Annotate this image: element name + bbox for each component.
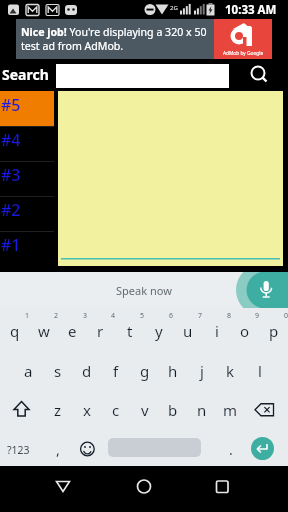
button[interactable]: h xyxy=(158,351,187,391)
staticText: ?123 xyxy=(7,443,30,457)
button[interactable]: y xyxy=(144,311,173,351)
staticText: 8 xyxy=(227,311,232,321)
button[interactable] xyxy=(73,430,102,469)
staticText: h xyxy=(168,361,178,381)
button[interactable]: c xyxy=(101,390,130,430)
button[interactable]: b xyxy=(158,390,187,430)
staticText: #3 xyxy=(1,164,21,186)
button[interactable]: f xyxy=(101,351,130,391)
button[interactable]: x xyxy=(72,390,101,430)
staticText: 0 xyxy=(284,311,288,321)
staticText: 2 xyxy=(54,311,59,321)
button[interactable]: n xyxy=(187,390,216,430)
button[interactable] xyxy=(251,437,274,460)
staticText: 5 xyxy=(140,311,145,321)
staticText: 7 xyxy=(198,311,203,321)
button[interactable]: g xyxy=(130,351,159,391)
staticText: o xyxy=(240,321,250,341)
button[interactable]: , xyxy=(43,430,72,469)
button[interactable]: k xyxy=(216,351,245,391)
button[interactable] xyxy=(199,466,245,512)
button[interactable]: r xyxy=(86,311,115,351)
staticText: z xyxy=(54,400,62,420)
button[interactable]: u xyxy=(173,311,202,351)
button[interactable]: ?123 xyxy=(0,430,36,469)
button[interactable]: o xyxy=(230,311,259,351)
button[interactable]: z xyxy=(43,390,72,430)
button[interactable]: e xyxy=(58,311,87,351)
staticText: u xyxy=(183,321,193,341)
staticText: 4 xyxy=(111,311,116,321)
button[interactable]: #1 xyxy=(0,231,54,266)
staticText: v xyxy=(141,400,149,420)
staticText: #1 xyxy=(1,234,21,256)
staticText: 10:33 AM xyxy=(225,2,277,18)
button[interactable]: #5 xyxy=(0,91,54,126)
staticText: d xyxy=(82,361,92,381)
staticText: Nice job! You're displaying a 320 x 50 t… xyxy=(21,25,207,53)
staticText: #2 xyxy=(1,199,21,221)
button[interactable]: #3 xyxy=(0,161,54,196)
button[interactable] xyxy=(121,466,167,512)
button[interactable]: #4 xyxy=(0,126,54,161)
staticText: f xyxy=(113,361,119,381)
button[interactable]: i xyxy=(202,311,231,351)
button[interactable]: Nice job! You're displaying a 320 x 50 t… xyxy=(16,19,272,59)
staticText: a xyxy=(24,361,33,381)
staticText: g xyxy=(140,361,150,381)
staticText: 1 xyxy=(25,311,30,321)
staticText: k xyxy=(226,361,235,381)
staticText: Search xyxy=(2,65,49,84)
staticText: m xyxy=(223,400,238,420)
button[interactable]: Speak now xyxy=(0,272,288,308)
button[interactable] xyxy=(108,438,201,457)
staticText: i xyxy=(215,321,219,341)
button[interactable] xyxy=(40,466,86,512)
staticText: c xyxy=(112,400,120,420)
staticText: t xyxy=(127,321,133,341)
button[interactable]: l xyxy=(245,351,274,391)
staticText: #4 xyxy=(1,129,21,151)
button[interactable]: v xyxy=(130,390,159,430)
staticText: 3 xyxy=(83,311,88,321)
button[interactable] xyxy=(0,390,43,430)
staticText: x xyxy=(83,400,91,420)
button[interactable] xyxy=(58,91,283,266)
staticText: . xyxy=(229,440,233,459)
staticText: 6 xyxy=(169,311,174,321)
staticText: , xyxy=(56,440,60,459)
button[interactable] xyxy=(244,60,274,90)
staticText: l xyxy=(258,361,262,381)
button[interactable]: s xyxy=(43,351,72,391)
staticText: 2G xyxy=(170,4,178,12)
staticText: y xyxy=(155,321,163,341)
button[interactable]: d xyxy=(72,351,101,391)
button[interactable]: m xyxy=(216,390,245,430)
button[interactable]: w xyxy=(29,311,58,351)
staticText: q xyxy=(10,321,20,341)
button[interactable]: p xyxy=(259,311,288,351)
button[interactable]: a xyxy=(14,351,43,391)
staticText: b xyxy=(168,400,178,420)
staticText: p xyxy=(269,321,279,341)
button[interactable] xyxy=(246,390,288,430)
staticText: j xyxy=(200,361,204,381)
staticText: 9 xyxy=(255,311,260,321)
staticText: Speak now xyxy=(116,283,172,298)
staticText: e xyxy=(68,321,77,341)
staticText: r xyxy=(97,321,104,341)
staticText: w xyxy=(38,321,50,341)
button[interactable]: . xyxy=(216,430,245,469)
staticText: n xyxy=(197,400,207,420)
button[interactable]: #2 xyxy=(0,196,54,231)
button[interactable]: t xyxy=(115,311,144,351)
button[interactable]: q xyxy=(0,311,29,351)
button[interactable]: j xyxy=(187,351,216,391)
staticText: s xyxy=(54,361,62,381)
staticText: AdMob by Google xyxy=(223,50,264,57)
staticText: #5 xyxy=(1,94,21,116)
